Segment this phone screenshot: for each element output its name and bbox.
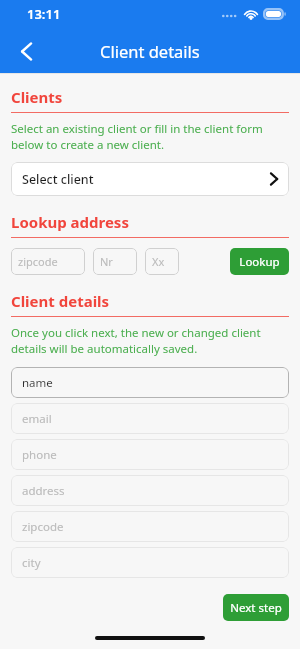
staticText: 13:11 — [27, 5, 61, 23]
button[interactable]: Xx — [145, 248, 179, 275]
staticText: Client details — [100, 40, 200, 62]
button[interactable]: Next step — [223, 594, 289, 621]
button[interactable]: zipcode — [11, 511, 289, 542]
button[interactable]: Back — [9, 34, 43, 68]
staticText: city — [22, 555, 41, 571]
staticText: zipcode — [22, 519, 64, 535]
button[interactable]: city — [11, 547, 289, 578]
staticText: phone — [22, 447, 57, 463]
button[interactable]: address — [11, 475, 289, 506]
staticText: name — [22, 375, 53, 391]
staticText: address — [22, 483, 65, 499]
staticText: Lookup — [239, 254, 280, 270]
staticText: zipcode — [18, 254, 58, 269]
button[interactable]: Nr — [93, 248, 137, 275]
button[interactable]: Select client — [11, 162, 289, 196]
button[interactable]: phone — [11, 439, 289, 470]
staticText: email — [22, 411, 52, 427]
staticText: Select an existing client or fill in the… — [11, 121, 289, 152]
staticText: Select client — [22, 171, 94, 188]
staticText: Next step — [230, 600, 282, 616]
staticText: Clients — [11, 87, 63, 107]
button[interactable]: email — [11, 403, 289, 434]
staticText: Once you click next, the new or changed … — [11, 325, 289, 356]
staticText: Xx — [152, 254, 165, 269]
button[interactable]: Lookup — [230, 248, 289, 275]
staticText: Client details — [11, 291, 110, 311]
button[interactable]: name — [11, 367, 289, 398]
staticText: Lookup address — [11, 212, 129, 232]
staticText: Nr — [100, 254, 113, 269]
button[interactable]: zipcode — [11, 248, 85, 275]
